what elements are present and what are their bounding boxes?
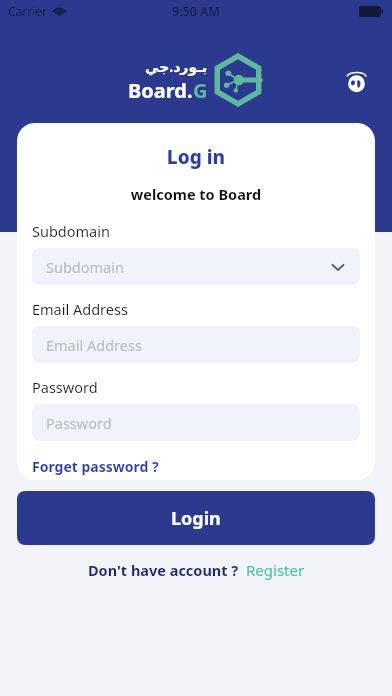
staticText: Don't have account ? [88,560,239,580]
staticText: Carrier [8,3,48,19]
button[interactable]: Register [246,560,305,580]
staticText: Forget password ? [32,457,159,476]
staticText: 9:50 AM [172,3,220,20]
staticText: Register [246,560,305,580]
staticText: Login [171,506,221,531]
staticText: Password [32,377,98,397]
staticText: بـورد.جي [145,57,208,76]
staticText: welcome to Board [17,184,375,204]
button[interactable]: Email Address [32,326,360,363]
button[interactable]: Password [32,404,360,441]
button[interactable]: Forget password ? [32,455,159,478]
button[interactable]: Login [17,491,375,545]
staticText: Email Address [46,335,346,355]
button[interactable]: Change language [340,66,372,98]
staticText: Log in [17,144,375,170]
staticText: Email Address [32,299,128,319]
staticText: G [193,77,208,104]
button[interactable]: Subdomain [32,248,360,285]
staticText: Subdomain [46,257,330,277]
staticText: Board. [128,77,193,104]
staticText: Subdomain [32,221,110,241]
staticText: Password [46,413,346,433]
